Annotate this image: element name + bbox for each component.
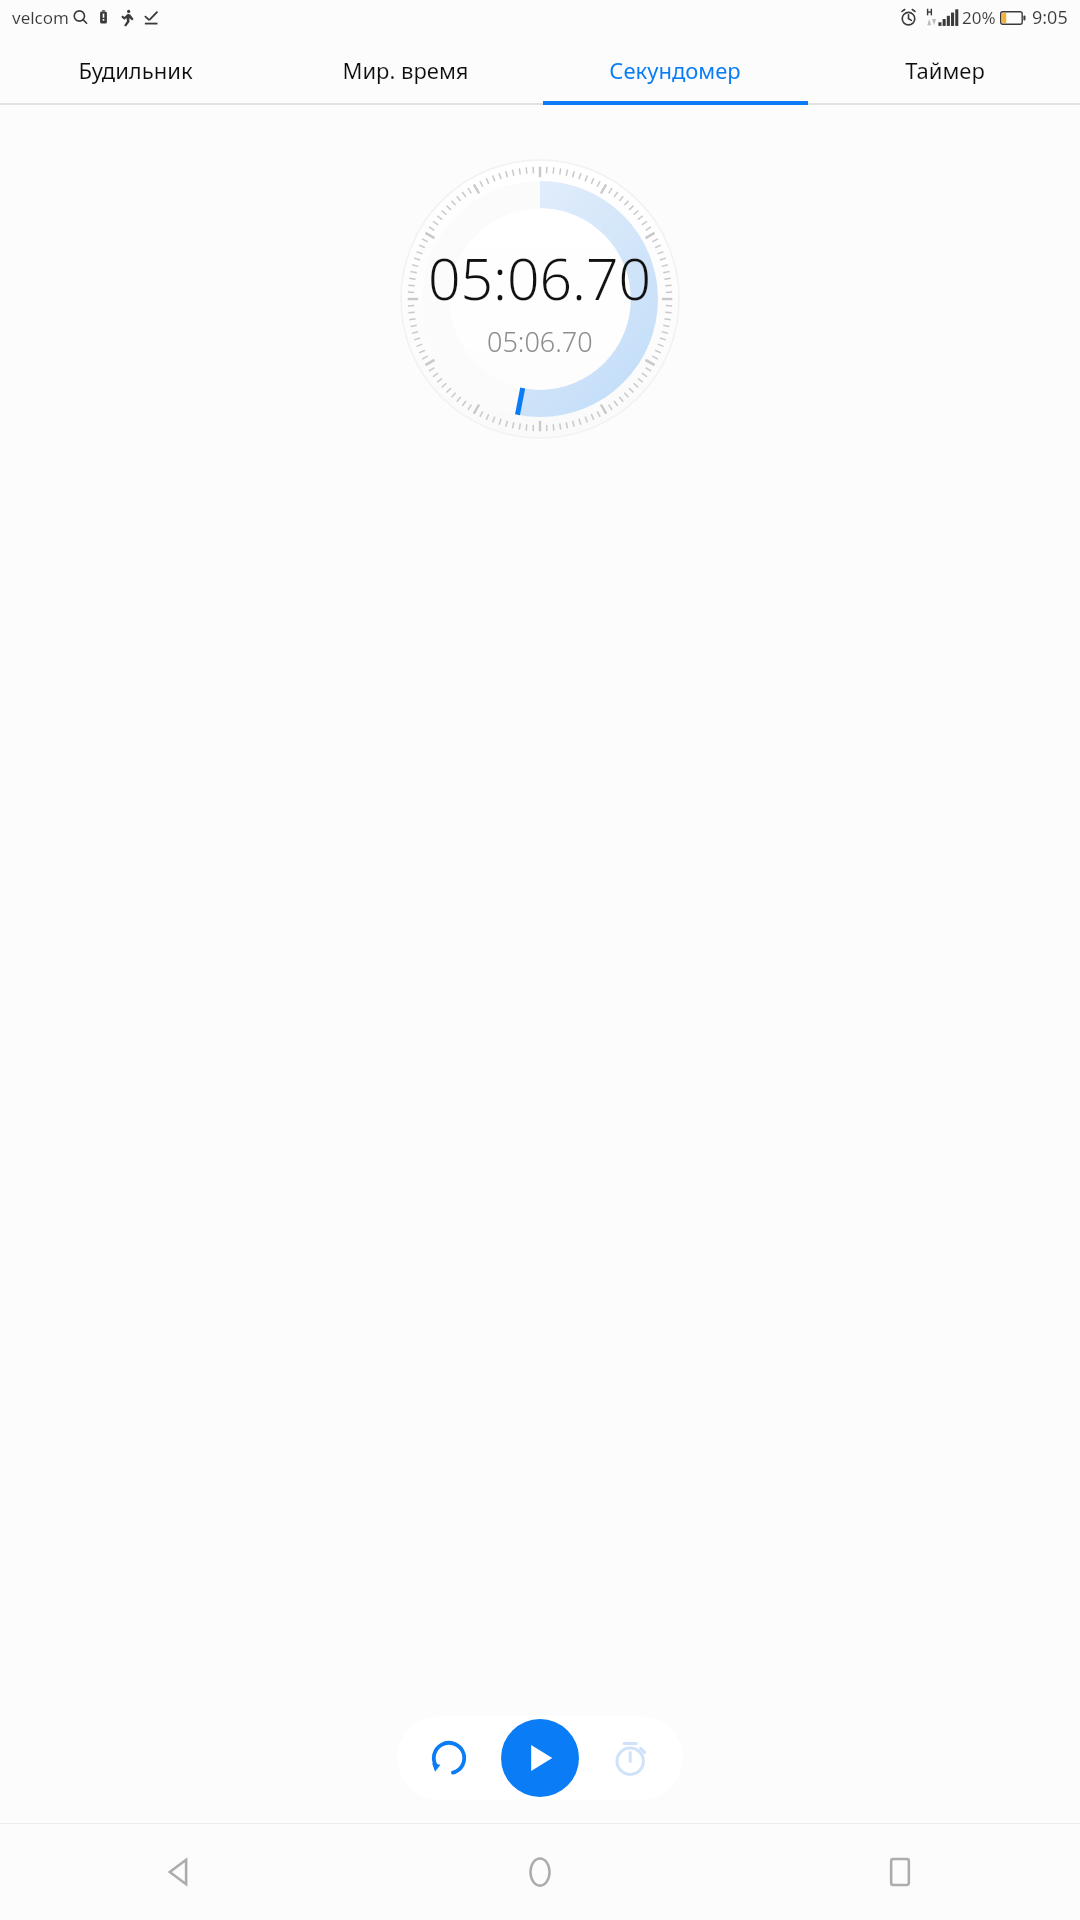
button[interactable]: Lap [600, 1727, 662, 1789]
staticText: Мир. время [342, 55, 469, 85]
button[interactable]: Reset [418, 1727, 480, 1789]
staticText: 20% [962, 6, 996, 29]
button[interactable]: Будильник [0, 35, 270, 105]
staticText: 9:05 [1032, 5, 1068, 30]
button[interactable]: Таймер [810, 35, 1080, 105]
button[interactable]: Start [501, 1719, 579, 1797]
button[interactable]: Home [360, 1824, 720, 1920]
staticText: 05:06.70 [487, 323, 593, 360]
button[interactable]: Мир. время [270, 35, 540, 105]
staticText: Таймер [905, 55, 985, 85]
staticText: velcom [12, 6, 69, 29]
staticText: Секундомер [609, 55, 741, 85]
staticText: Будильник [78, 55, 193, 85]
button[interactable]: Back [0, 1824, 360, 1920]
button[interactable]: Recent apps [720, 1824, 1080, 1920]
button[interactable]: Секундомер [540, 35, 810, 105]
staticText: 05:06.70 [428, 239, 652, 317]
